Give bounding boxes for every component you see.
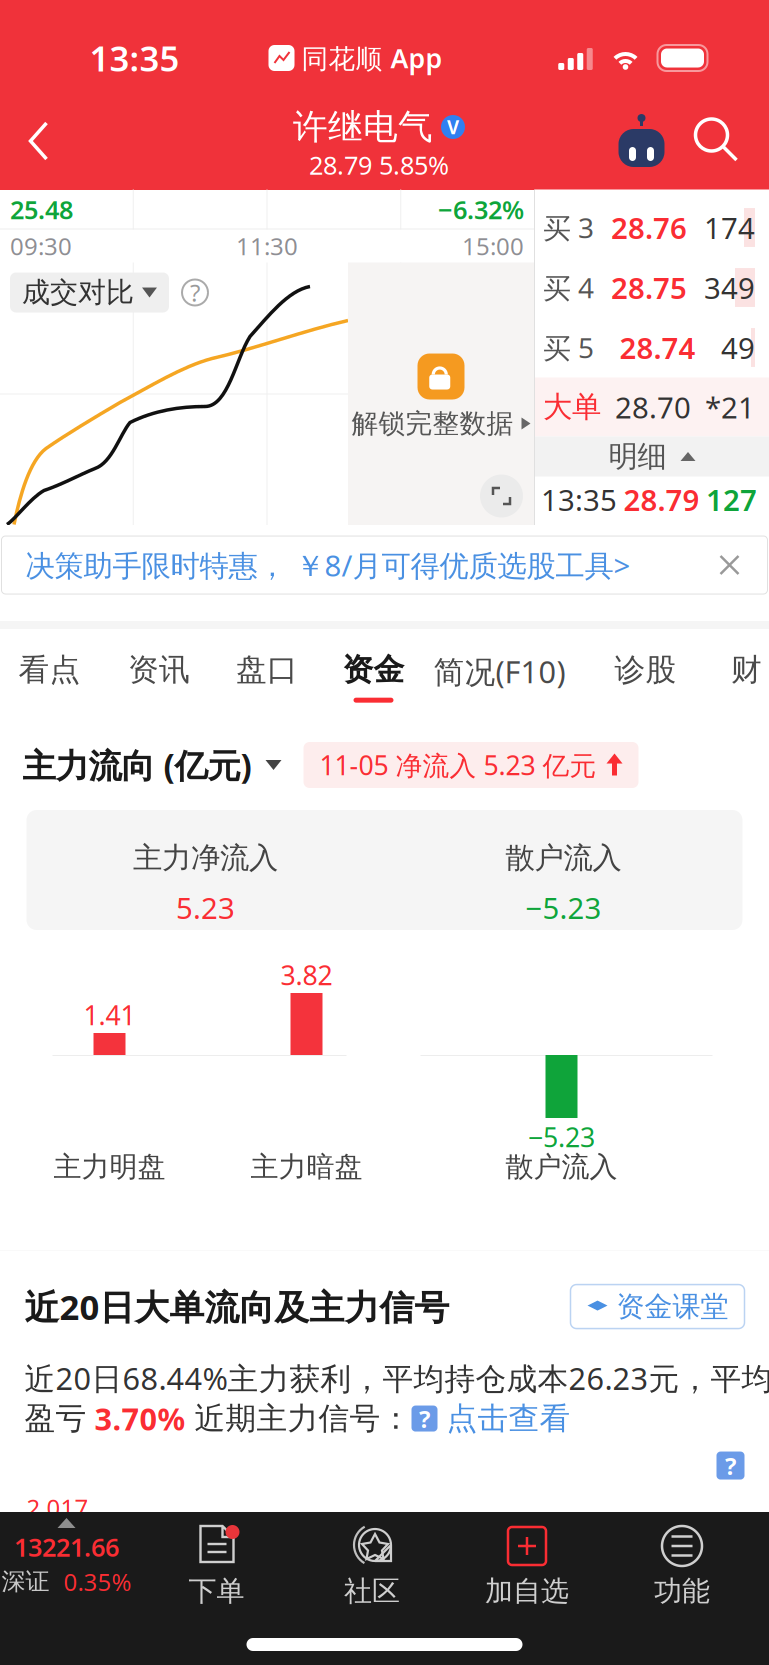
staticText: 近20日大单流向及主力信号 [24, 1283, 449, 1329]
staticText: 买 3 [543, 209, 594, 246]
staticText: 决策助手限时特惠， ￥8/月可得优质选股工具> [25, 545, 630, 584]
button[interactable]: 点击查看 [437, 1400, 570, 1437]
staticText: 49 [721, 328, 755, 367]
button[interactable]: 成交对比 [10, 272, 169, 312]
staticText: 散户流入 [505, 1150, 617, 1184]
staticText: 349 [704, 268, 755, 307]
staticText: 买 5 [543, 329, 594, 366]
staticText: 解锁完整数据 [351, 407, 513, 440]
staticText: 简况(F10) [433, 651, 565, 692]
button[interactable]: 资金 [320, 629, 426, 720]
staticText: 看点 [18, 651, 80, 689]
staticText: 资金 [342, 651, 404, 689]
staticText: 主力流向 (亿元) [22, 743, 251, 787]
staticText: 127 [706, 480, 757, 519]
button[interactable]: 财 [718, 629, 769, 720]
staticText: ? [419, 1403, 430, 1434]
staticText: 点击查看 [437, 1400, 570, 1437]
staticText: 3.82 [280, 957, 332, 993]
button[interactable]: 解锁完整数据 [351, 353, 530, 438]
staticText: −6.32% [438, 193, 524, 226]
staticText: 1.41 [83, 997, 135, 1033]
staticText: 散户流入 [505, 840, 621, 876]
staticText: 盈亏 [24, 1400, 86, 1437]
staticText: 诊股 [614, 651, 676, 689]
button[interactable]: 资讯 [104, 629, 213, 720]
staticText: 盘口 [236, 651, 298, 689]
staticText: 功能 [654, 1574, 710, 1608]
button[interactable]: Fullscreen [480, 474, 523, 517]
button[interactable]: 决策助手限时特惠， ￥8/月可得优质选股工具> [1, 545, 630, 584]
staticText: 28.76 [611, 208, 687, 247]
staticText: 13221.66 [14, 1530, 119, 1564]
staticText: 28.70 [615, 387, 691, 426]
staticText: 174 [704, 208, 755, 247]
staticText: ? [190, 277, 200, 308]
staticText: 财 [731, 651, 762, 689]
staticText: 13:35 [541, 480, 617, 519]
staticText: 28.79 5.85% [309, 148, 449, 182]
staticText: 深证 [1, 1567, 49, 1596]
staticText: 13:35 [89, 35, 179, 81]
staticText: 资金课堂 [616, 1289, 728, 1324]
button[interactable]: Help [716, 1452, 744, 1480]
staticText: V [447, 115, 459, 139]
staticText: 主力净流入 [133, 840, 278, 876]
button[interactable]: Close [701, 537, 757, 593]
button[interactable]: 简况(F10) [426, 629, 572, 720]
button[interactable]: Help [169, 272, 221, 312]
button[interactable]: 主力流向 (亿元) [22, 743, 281, 787]
button[interactable]: 看点 [0, 629, 104, 720]
button[interactable]: 13221.66 [0, 1512, 138, 1614]
staticText: 同花顺 App [301, 40, 442, 76]
staticText: 近期主力信号： [185, 1400, 411, 1437]
staticText: −5.23 [525, 888, 601, 927]
staticText: 11-05 净流入 5.23 亿元 [319, 747, 596, 783]
button[interactable]: AI assistant [614, 106, 668, 176]
staticText: 5.23 [176, 888, 235, 927]
staticText: 28.75 [611, 268, 687, 307]
staticText: 09:30 [10, 230, 72, 262]
button[interactable]: 功能 [604, 1512, 759, 1614]
staticText: *21 [705, 387, 755, 426]
staticText: 主力明盘 [53, 1150, 165, 1184]
button[interactable]: 明细 [535, 436, 769, 476]
staticText: 资讯 [128, 651, 190, 689]
staticText: 2.017 [26, 1492, 88, 1523]
staticText: 0.35% [63, 1566, 131, 1597]
staticText: 许继电气 [293, 106, 433, 148]
staticText: 25.48 [10, 193, 73, 226]
staticText: 买 4 [543, 269, 594, 306]
staticText: ? [725, 1450, 736, 1481]
staticText: 主力暗盘 [250, 1150, 362, 1184]
button[interactable]: 盘口 [213, 629, 320, 720]
button[interactable]: 11-05 净流入 5.23 亿元 [303, 742, 638, 788]
staticText: 3.70% [86, 1398, 185, 1439]
staticText: 28.79 [623, 480, 699, 519]
staticText: 15:00 [462, 230, 524, 262]
staticText: 社区 [344, 1574, 400, 1608]
staticText: −5.23 [528, 1119, 595, 1155]
button[interactable]: 加自选 [449, 1512, 604, 1614]
staticText: 成交对比 [22, 275, 134, 310]
button[interactable]: Back [0, 92, 82, 190]
button[interactable]: Search [692, 106, 742, 176]
staticText: 下单 [188, 1574, 244, 1608]
button[interactable]: 下单 [138, 1512, 294, 1614]
staticText: 大单 [543, 389, 601, 425]
staticText: 近20日68.44%主力获利，平均持仓成本26.23元，平均 [24, 1358, 769, 1398]
staticText: 28.74 [619, 328, 695, 367]
staticText: 11:30 [236, 230, 298, 262]
staticText: 加自选 [485, 1574, 569, 1608]
staticText: 明细 [608, 438, 666, 474]
button[interactable]: 诊股 [572, 629, 718, 720]
button[interactable]: 资金课堂 [570, 1285, 744, 1329]
button[interactable]: 社区 [294, 1512, 449, 1614]
